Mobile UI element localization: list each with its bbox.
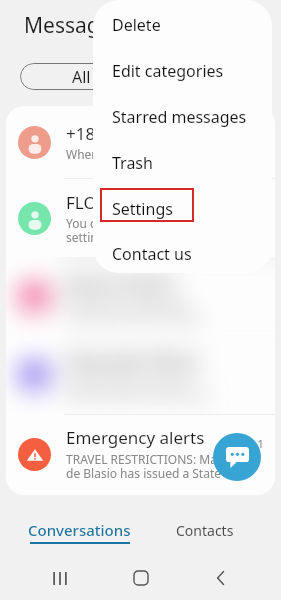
staticText: Alexander Wong — [66, 348, 198, 371]
button[interactable]: Delete — [93, 2, 272, 48]
staticText: All — [72, 66, 91, 88]
button[interactable]: Conversations — [0, 510, 140, 555]
button[interactable]: New conversation — [213, 433, 261, 481]
staticText: Thanks for letting me know about the cha… — [66, 294, 199, 325]
button[interactable]: Contact us — [93, 232, 272, 273]
button[interactable]: Jessica Parker — [6, 258, 275, 336]
staticText: Emergency alerts — [66, 426, 205, 449]
staticText: FLO Health — [66, 191, 154, 214]
staticText: You can change these settings any time i… — [66, 215, 199, 246]
button[interactable]: Emergency alerts — [6, 415, 275, 493]
staticText: Feb 1 — [236, 436, 264, 451]
staticText: TRAVEL RESTRICTIONS: Mayor de Blasio has… — [66, 451, 236, 482]
button[interactable]: +18005551234 — [6, 106, 275, 178]
button[interactable]: Back — [201, 558, 241, 598]
staticText: +18005551234 — [66, 122, 183, 145]
button[interactable]: Contacts — [140, 510, 281, 555]
staticText: Starred messages — [112, 106, 247, 128]
staticText: Contact us — [112, 243, 192, 265]
button[interactable]: Alexander Wong — [6, 337, 275, 414]
staticText: When you are ready we — [66, 146, 199, 162]
staticText: Conversations — [28, 520, 131, 540]
button[interactable]: Recents — [40, 558, 80, 598]
staticText: Delete — [112, 14, 161, 36]
staticText: Sounds good, see you there tomorrow morn… — [66, 372, 208, 403]
button[interactable]: Trash — [93, 140, 272, 186]
button[interactable]: Settings — [93, 186, 272, 232]
button[interactable]: FLO Health — [6, 179, 275, 257]
button[interactable]: Home — [121, 558, 161, 598]
staticText: Contacts — [176, 521, 234, 540]
button[interactable]: Starred messages — [93, 94, 272, 140]
staticText: Settings — [112, 198, 173, 220]
staticText: Edit categories — [112, 60, 224, 82]
button[interactable]: Edit categories — [93, 48, 272, 94]
staticText: Messages — [24, 11, 122, 40]
button[interactable]: All — [20, 63, 143, 90]
staticText: Trash — [112, 152, 153, 174]
staticText: Jessica Parker — [66, 270, 176, 293]
